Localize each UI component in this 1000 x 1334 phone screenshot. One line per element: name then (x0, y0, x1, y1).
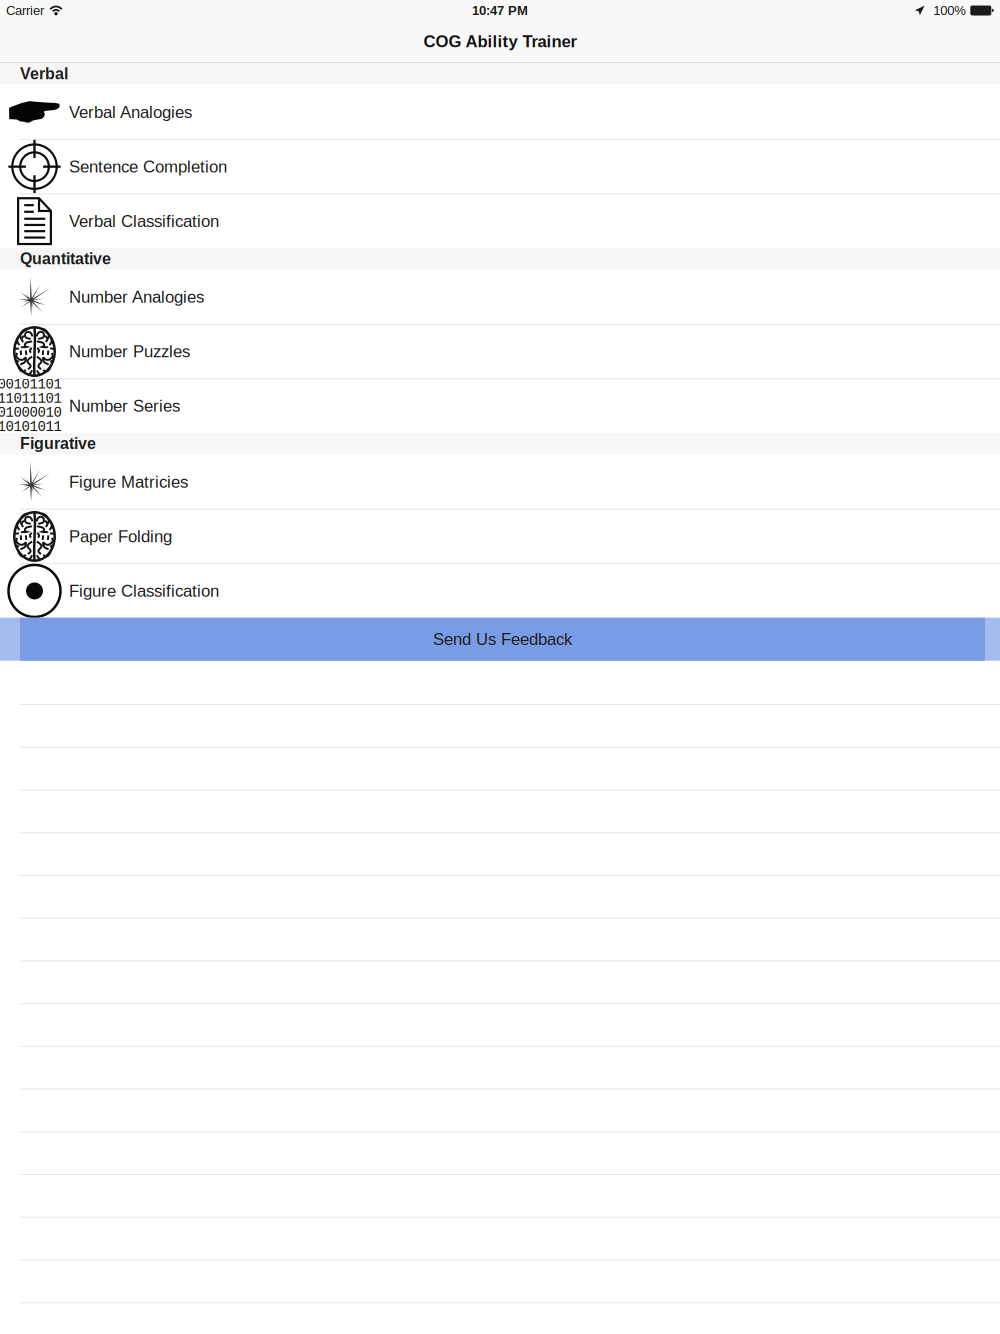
staticText: Paper Folding (69, 527, 172, 546)
button[interactable]: Sentence Completion (0, 139, 1000, 193)
staticText: 00101101 (0, 377, 61, 393)
button[interactable]: Number Series (0, 378, 1000, 433)
staticText: Send Us Feedback (433, 630, 572, 648)
staticText: Quantitative (20, 250, 111, 268)
staticText: 11011101 (0, 391, 61, 407)
button[interactable]: Figure Classification (0, 563, 1000, 618)
staticText: Number Puzzles (69, 342, 190, 361)
button[interactable]: Paper Folding (0, 509, 1000, 563)
staticText: Sentence Completion (69, 157, 227, 176)
staticText: 10101011 (0, 419, 61, 435)
staticText: Verbal (20, 65, 68, 83)
staticText: Verbal Classification (69, 212, 219, 231)
staticText: Figure Matricies (69, 473, 188, 491)
staticText: 01000010 (0, 405, 61, 421)
staticText: COG Ability Trainer (423, 32, 576, 51)
button[interactable]: Number Puzzles (0, 324, 1000, 378)
button[interactable]: Figure Matricies (0, 454, 1000, 509)
staticText: Figurative (20, 435, 96, 452)
staticText: Number Analogies (69, 288, 204, 306)
button[interactable]: Verbal Analogies (0, 84, 1000, 139)
staticText: Verbal Analogies (69, 103, 192, 122)
button[interactable]: Number Analogies (0, 269, 1000, 324)
button[interactable]: Send Us Feedback (0, 618, 1000, 661)
staticText: Figure Classification (69, 582, 219, 600)
button[interactable]: Verbal Classification (0, 193, 1000, 248)
staticText: Number Series (69, 397, 180, 415)
staticText: 10:47 PM (472, 3, 528, 18)
staticText: 100% (933, 3, 966, 18)
staticText: Carrier (6, 3, 44, 18)
